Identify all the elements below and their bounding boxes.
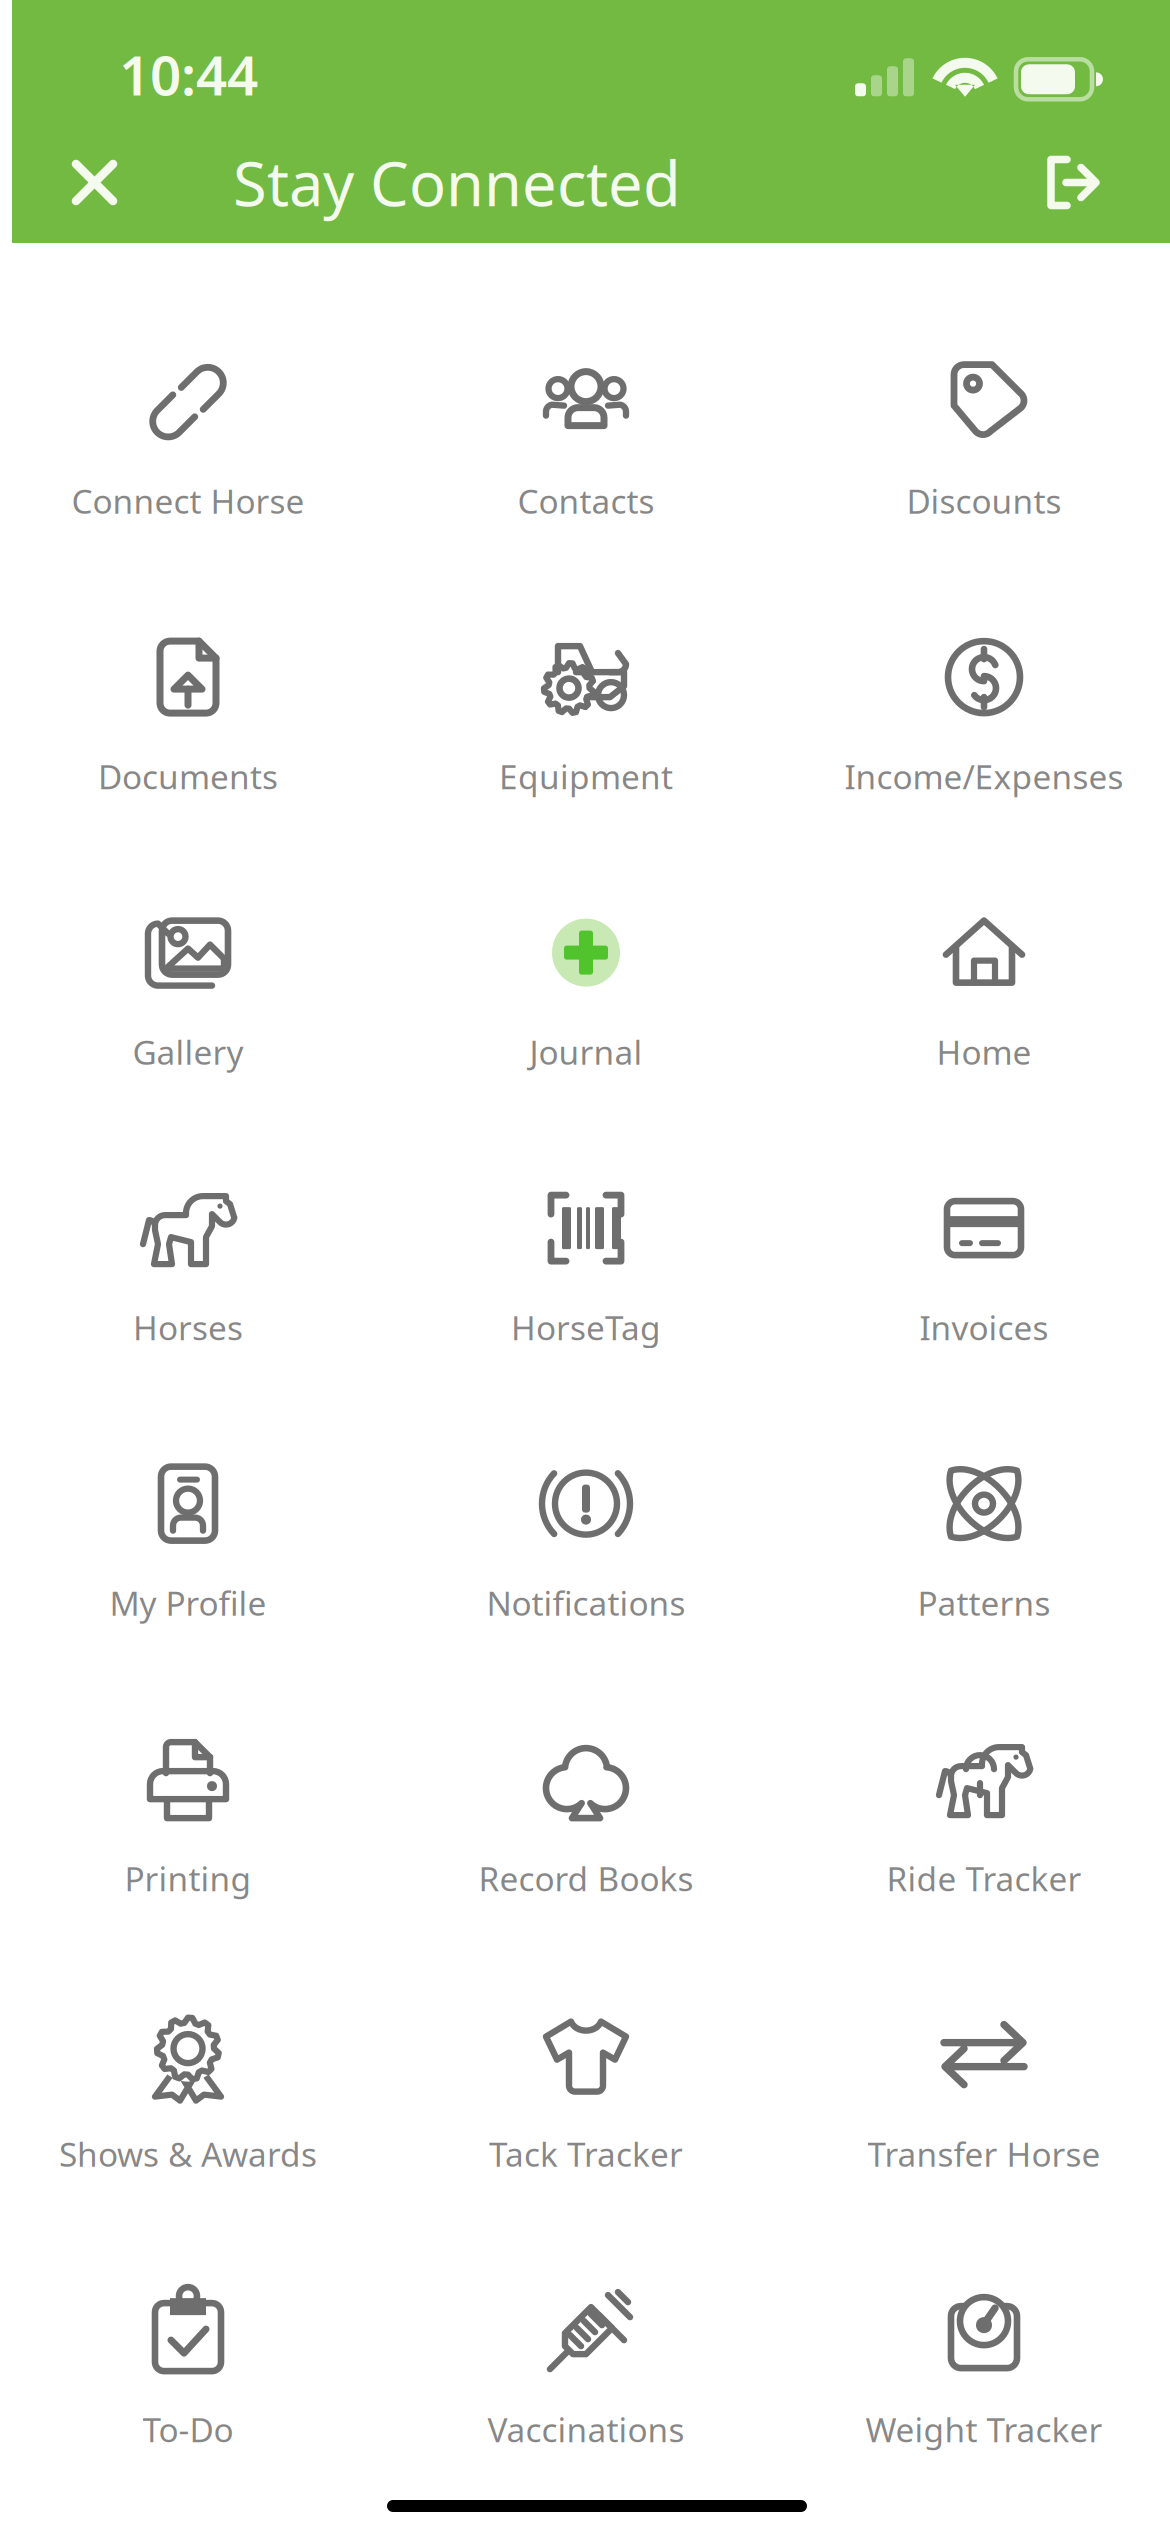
staticText: Journal — [529, 1030, 642, 1074]
button[interactable]: Connect Horse — [0, 243, 387, 518]
button[interactable]: Discounts — [785, 243, 1170, 518]
staticText: Vaccinations — [487, 2407, 684, 2451]
button[interactable]: Notifications — [387, 1345, 785, 1620]
button[interactable]: Journal — [387, 794, 785, 1069]
staticText: Patterns — [917, 1581, 1050, 1625]
staticText: Equipment — [499, 754, 673, 798]
staticText: Documents — [98, 754, 278, 798]
staticText: My Profile — [109, 1581, 266, 1625]
staticText: Record Books — [478, 1856, 693, 1900]
button[interactable]: Printing — [0, 1620, 387, 1896]
button[interactable]: Horses — [0, 1069, 387, 1345]
button[interactable]: Invoices — [785, 1069, 1170, 1345]
button[interactable]: My Profile — [0, 1345, 387, 1620]
staticText: Invoices — [919, 1305, 1048, 1349]
button[interactable]: Weight Tracker — [785, 2171, 1170, 2447]
staticText: Stay Connected — [233, 142, 681, 223]
staticText: Contacts — [517, 479, 654, 523]
button[interactable]: Tack Tracker — [387, 1896, 785, 2171]
staticText: 10:44 — [119, 38, 258, 111]
button[interactable]: Patterns — [785, 1345, 1170, 1620]
staticText: Weight Tracker — [865, 2407, 1102, 2451]
staticText: Gallery — [132, 1030, 243, 1074]
staticText: HorseTag — [511, 1305, 661, 1349]
staticText: Tack Tracker — [489, 2132, 683, 2176]
staticText: Income/Expenses — [844, 754, 1123, 798]
staticText: Shows & Awards — [59, 2132, 317, 2176]
staticText: Printing — [124, 1856, 251, 1900]
staticText: Discounts — [906, 479, 1061, 523]
button[interactable]: Contacts — [387, 243, 785, 518]
button[interactable]: HorseTag — [387, 1069, 785, 1345]
button[interactable]: Vaccinations — [387, 2171, 785, 2447]
button[interactable]: Ride Tracker — [785, 1620, 1170, 1896]
staticText: Transfer Horse — [867, 2132, 1100, 2176]
staticText: Notifications — [486, 1581, 685, 1625]
button[interactable]: Documents — [0, 518, 387, 794]
button[interactable]: Log out — [1019, 130, 1125, 234]
staticText: Connect Horse — [71, 479, 304, 523]
button[interactable]: Equipment — [387, 518, 785, 794]
staticText: Home — [936, 1030, 1031, 1074]
button[interactable]: Close — [43, 131, 146, 234]
staticText: Ride Tracker — [886, 1856, 1081, 1900]
staticText: Horses — [133, 1305, 243, 1349]
button[interactable]: Shows & Awards — [0, 1896, 387, 2171]
button[interactable]: Record Books — [387, 1620, 785, 1896]
button[interactable]: Home — [785, 794, 1170, 1069]
button[interactable]: Income/Expenses — [785, 518, 1170, 794]
button[interactable]: Transfer Horse — [785, 1896, 1170, 2171]
button[interactable]: To-Do — [0, 2171, 387, 2447]
button[interactable]: Gallery — [0, 794, 387, 1069]
staticText: To-Do — [142, 2407, 233, 2451]
